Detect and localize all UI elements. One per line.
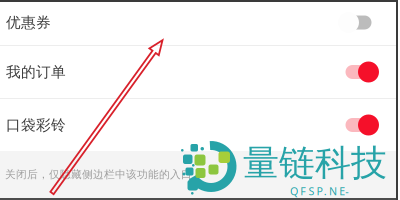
staticText: 关闭后，仅隐藏侧边栏中该功能的入口 [5, 168, 192, 181]
staticText: 优惠券 [6, 13, 51, 31]
staticText: 口袋彩铃 [6, 116, 66, 134]
staticText: 量链科技 [243, 141, 387, 185]
staticText: 我的订单 [6, 63, 66, 81]
button[interactable]: 口袋彩铃 [0, 99, 400, 151]
staticText: QFSP.NET [290, 184, 353, 198]
button[interactable]: 我的订单 [0, 46, 400, 98]
button[interactable]: 优惠券 [0, 0, 400, 45]
